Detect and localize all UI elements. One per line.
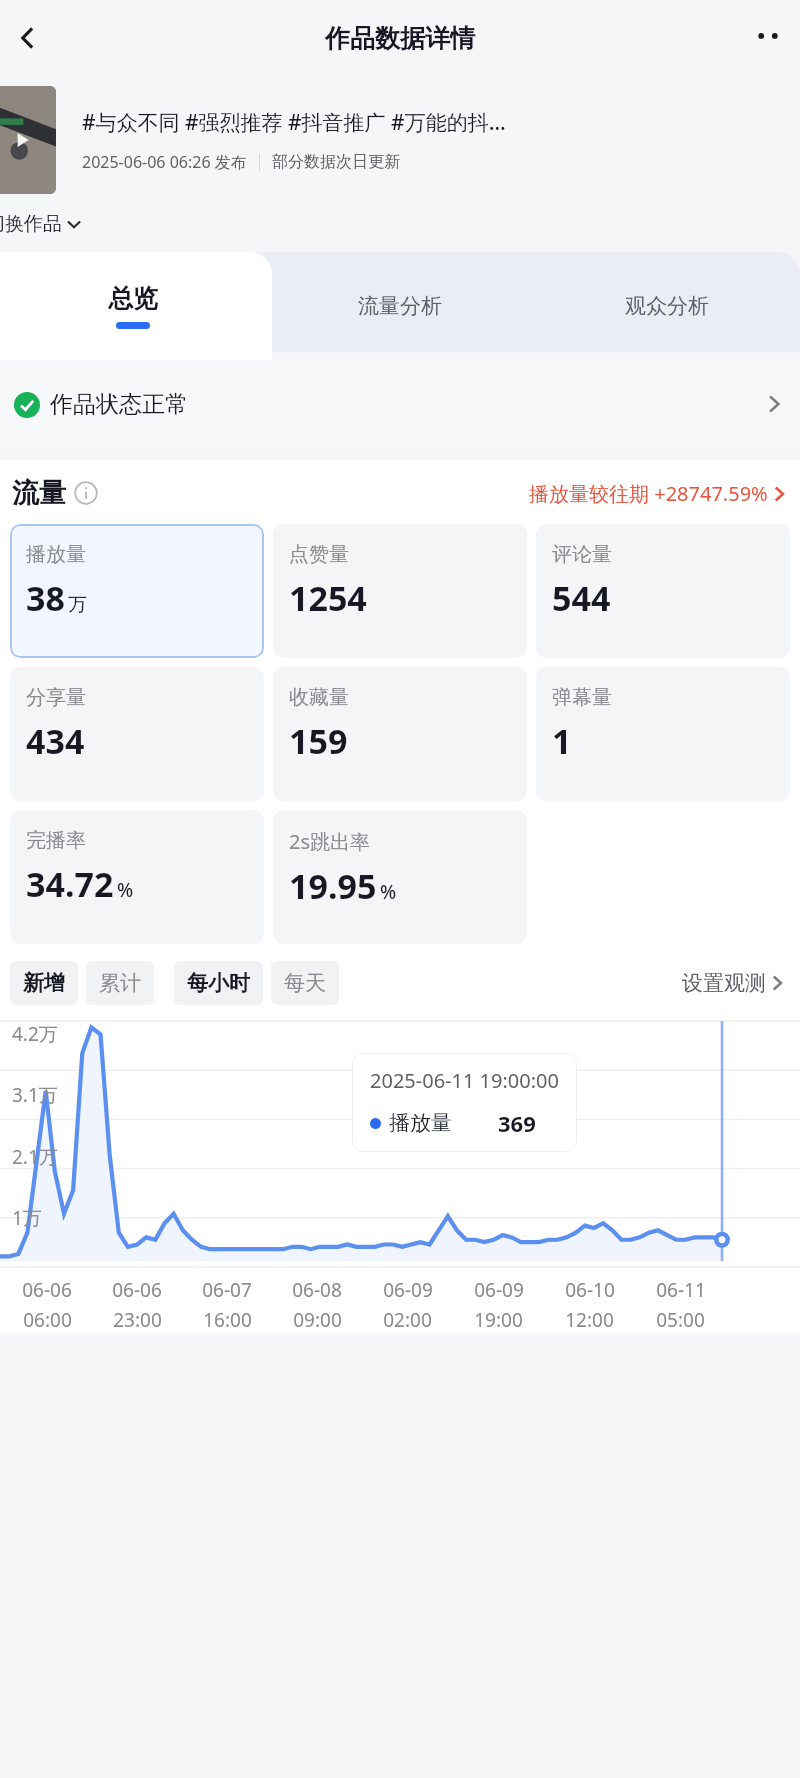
staticText: 06-08 <box>292 1277 342 1303</box>
staticText: 点赞量 <box>289 542 349 567</box>
button[interactable]: 播放量较往期 +28747.59% <box>529 480 788 507</box>
staticText: 作品状态正常 <box>50 390 188 419</box>
staticText: 评论量 <box>552 542 612 567</box>
staticText: 02:00 <box>383 1307 432 1333</box>
button[interactable]: 作品状态正常 <box>0 360 800 448</box>
staticText: 万 <box>68 593 87 617</box>
button[interactable]: 新增 <box>10 961 78 1005</box>
button[interactable]: Back <box>2 12 54 64</box>
staticText: 每天 <box>284 970 326 996</box>
button[interactable]: #与众不同 #强烈推荐 #抖音推广 #万能的抖… <box>0 86 800 194</box>
staticText: 4.2万 <box>12 1021 58 1047</box>
staticText: 分享量 <box>26 685 86 710</box>
staticText: 09:00 <box>293 1307 342 1333</box>
button[interactable]: 分享量 <box>10 667 264 801</box>
staticText: 弹幕量 <box>552 685 612 710</box>
staticText: 播放量 <box>26 542 86 567</box>
button[interactable]: 完播率 <box>10 810 264 944</box>
staticText: 2s跳出率 <box>289 828 371 855</box>
button[interactable]: 弹幕量 <box>536 667 790 801</box>
staticText: 3.1万 <box>12 1082 58 1108</box>
staticText: 06-09 <box>474 1277 524 1303</box>
staticText: 544 <box>552 575 611 621</box>
staticText: 38 <box>26 575 65 621</box>
staticText: 34.72 <box>26 861 114 907</box>
staticText: 2.1万 <box>12 1144 58 1170</box>
staticText: 434 <box>26 718 85 764</box>
staticText: 播放量 <box>389 1110 452 1136</box>
staticText: % <box>380 879 397 905</box>
staticText: 369 <box>498 1108 536 1138</box>
staticText: 06-09 <box>383 1277 433 1303</box>
staticText: 设置观测 <box>682 970 766 996</box>
staticText: 159 <box>289 718 348 764</box>
staticText: 16:00 <box>203 1307 252 1333</box>
staticText: 流量分析 <box>358 293 442 319</box>
staticText: 累计 <box>99 970 141 996</box>
staticText: 收藏量 <box>289 685 349 710</box>
button[interactable]: 每小时 <box>174 961 263 1005</box>
button[interactable]: 播放量 <box>10 524 264 658</box>
staticText: 1万 <box>12 1205 42 1231</box>
staticText: 部分数据次日更新 <box>272 152 400 172</box>
staticText: 06-07 <box>202 1277 252 1303</box>
staticText: 作品数据详情 <box>325 23 475 54</box>
staticText: 2025-06-11 19:00:00 <box>370 1067 559 1094</box>
staticText: 06-06 <box>112 1277 162 1303</box>
staticText: 观众分析 <box>625 293 709 319</box>
staticText: 每小时 <box>187 970 250 996</box>
staticText: 05:00 <box>656 1307 705 1333</box>
button[interactable]: 切换作品 <box>0 212 92 236</box>
button[interactable]: Traffic info <box>74 481 98 505</box>
staticText: 总览 <box>108 283 158 314</box>
button[interactable]: 设置观测 <box>682 970 786 996</box>
button[interactable]: 点赞量 <box>273 524 527 658</box>
button[interactable]: 流量分析 <box>266 252 533 360</box>
button[interactable]: 每天 <box>271 961 339 1005</box>
staticText: 切换作品 <box>0 212 62 236</box>
button[interactable]: 总览 <box>0 252 266 360</box>
staticText: 06-11 <box>656 1277 706 1303</box>
staticText: 06:00 <box>23 1307 72 1333</box>
staticText: 23:00 <box>113 1307 162 1333</box>
staticText: 1 <box>552 718 572 764</box>
staticText: 播放量较往期 +28747.59% <box>529 480 768 507</box>
button[interactable]: 2s跳出率 <box>273 810 527 944</box>
staticText: 19.95 <box>289 863 377 909</box>
staticText: 2025-06-06 06:26 发布 <box>82 151 247 173</box>
button[interactable]: 观众分析 <box>533 252 800 360</box>
staticText: 06-06 <box>22 1277 72 1303</box>
staticText: 流量 <box>12 476 66 510</box>
staticText: 1254 <box>289 575 367 621</box>
staticText: % <box>117 877 134 903</box>
staticText: 06-10 <box>565 1277 615 1303</box>
button[interactable]: 评论量 <box>536 524 790 658</box>
button[interactable]: 累计 <box>86 961 154 1005</box>
button[interactable]: More options <box>742 12 794 64</box>
staticText: 新增 <box>23 970 65 996</box>
staticText: 12:00 <box>565 1307 614 1333</box>
button[interactable]: 收藏量 <box>273 667 527 801</box>
staticText: 19:00 <box>474 1307 523 1333</box>
staticText: #与众不同 #强烈推荐 #抖音推广 #万能的抖… <box>82 108 506 137</box>
staticText: 完播率 <box>26 828 86 853</box>
